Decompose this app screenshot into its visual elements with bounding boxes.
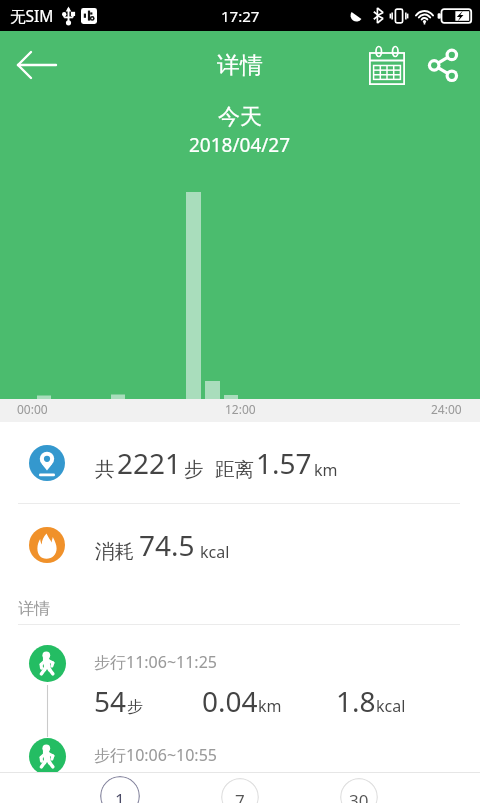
staticText: 1.8 [336, 682, 376, 718]
staticText: 12:00 [225, 401, 256, 417]
staticText: 30 [349, 789, 369, 803]
staticText: 步行11:06~11:25 [94, 651, 217, 673]
staticText: 详情 [217, 51, 263, 80]
staticText: 2221 [117, 444, 182, 482]
staticText: 7 [235, 789, 245, 803]
button[interactable]: Calendar [366, 44, 408, 86]
button[interactable]: 步行10:06~10:55 [0, 718, 480, 784]
staticText: km [258, 695, 282, 717]
button[interactable]: 步行11:06~11:25 [0, 625, 480, 718]
staticText: kcal [200, 541, 230, 563]
staticText: 74.5 [139, 526, 195, 564]
staticText: 1.57 [256, 444, 312, 482]
staticText: 步 [127, 697, 143, 717]
button[interactable]: Back [14, 42, 60, 88]
button[interactable]: 7 [221, 778, 259, 803]
staticText: 17:27 [221, 6, 260, 26]
staticText: 1 [115, 788, 125, 803]
staticText: 共 [95, 457, 115, 482]
staticText: 步 [184, 457, 204, 482]
staticText: kcal [376, 695, 406, 717]
button[interactable]: 30 [340, 778, 378, 803]
staticText: 24:00 [431, 401, 462, 417]
staticText: 消耗 [95, 539, 134, 564]
button[interactable]: Share [422, 44, 464, 86]
staticText: 今天 [218, 103, 262, 131]
staticText: 详情 [18, 599, 50, 619]
staticText: 步行10:06~10:55 [94, 744, 217, 766]
staticText: 54 [94, 682, 127, 718]
button[interactable]: 共 [0, 422, 480, 503]
staticText: 00:00 [17, 401, 48, 417]
staticText: km [314, 459, 338, 481]
staticText: 0.04 [202, 682, 258, 718]
staticText: 2018/04/27 [189, 132, 291, 158]
staticText: 无SIM [10, 5, 54, 26]
button[interactable]: 1 [100, 776, 140, 803]
button[interactable]: 消耗 [0, 504, 480, 585]
staticText: 距离 [215, 457, 254, 482]
